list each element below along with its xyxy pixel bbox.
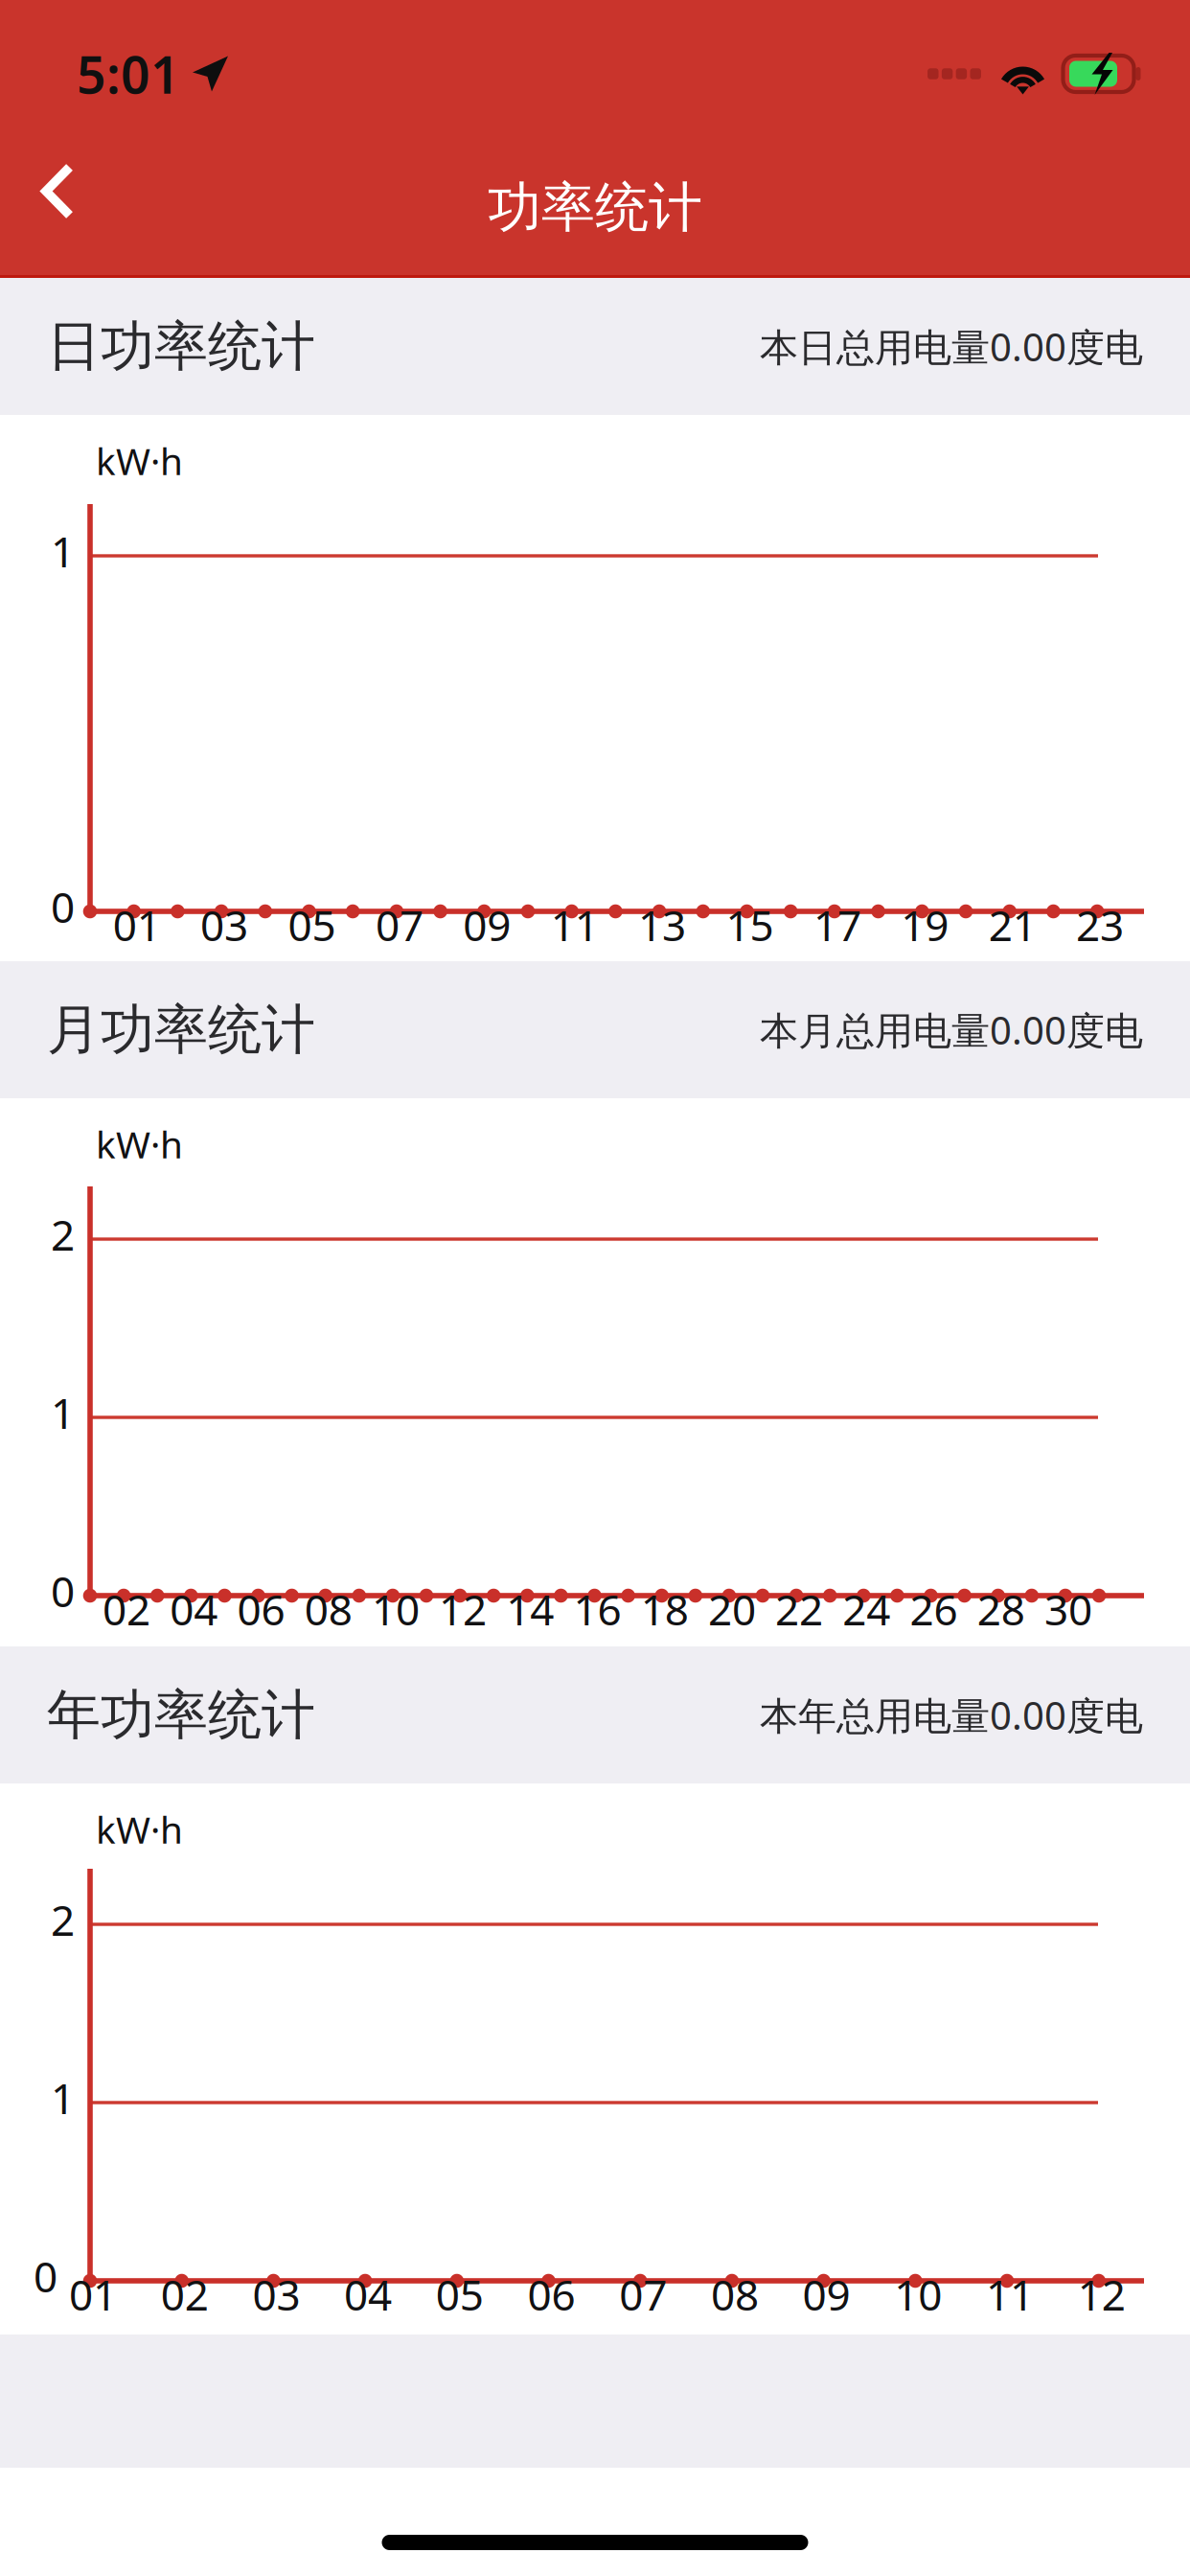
staticText: 22 — [775, 1581, 823, 1637]
staticText: 本年总用电量0.00度电 — [760, 1689, 1143, 1740]
staticText: 1 — [51, 1385, 75, 1441]
staticText: 04 — [170, 1581, 218, 1637]
staticText: 02 — [161, 2266, 209, 2322]
staticText: 18 — [641, 1581, 689, 1637]
staticText: 0 — [51, 1563, 75, 1619]
staticText: 1 — [51, 2070, 75, 2126]
button[interactable]: Back — [0, 106, 115, 276]
staticText: 21 — [989, 897, 1036, 953]
staticText: kW·h — [96, 1805, 183, 1854]
staticText: 23 — [1076, 897, 1124, 953]
staticText: 5:01 — [77, 40, 180, 108]
staticText: 07 — [619, 2266, 667, 2322]
staticText: 日功率统计 — [47, 313, 315, 379]
staticText: 01 — [113, 897, 161, 953]
staticText: 24 — [842, 1581, 890, 1637]
staticText: 年功率统计 — [47, 1682, 315, 1748]
staticText: 本月总用电量0.00度电 — [760, 1004, 1143, 1055]
staticText: 本日总用电量0.00度电 — [760, 321, 1143, 372]
staticText: 11 — [551, 897, 599, 953]
staticText: 20 — [708, 1581, 756, 1637]
staticText: 06 — [527, 2266, 575, 2322]
staticText: 13 — [638, 897, 686, 953]
staticText: 17 — [813, 897, 861, 953]
staticText: 12 — [1078, 2266, 1126, 2322]
staticText: 08 — [711, 2266, 759, 2322]
staticText: 07 — [375, 897, 423, 953]
staticText: 2 — [51, 1892, 75, 1948]
staticText: kW·h — [96, 436, 183, 485]
staticText: 06 — [237, 1581, 285, 1637]
staticText: 02 — [103, 1581, 151, 1637]
staticText: 03 — [200, 897, 248, 953]
staticText: 10 — [894, 2266, 942, 2322]
staticText: 2 — [51, 1206, 75, 1262]
staticText: kW·h — [96, 1119, 183, 1168]
staticText: 10 — [372, 1581, 420, 1637]
staticText: 14 — [506, 1581, 554, 1637]
staticText: 12 — [439, 1581, 487, 1637]
staticText: 28 — [977, 1581, 1025, 1637]
staticText: 16 — [573, 1581, 621, 1637]
staticText: 0 — [34, 2248, 57, 2304]
staticText: 0 — [51, 879, 75, 935]
staticText: 30 — [1044, 1581, 1092, 1637]
staticText: 15 — [726, 897, 774, 953]
staticText: 01 — [69, 2266, 117, 2322]
staticText: 05 — [288, 897, 336, 953]
staticText: 功率统计 — [488, 175, 702, 240]
staticText: 26 — [910, 1581, 958, 1637]
staticText: 09 — [803, 2266, 850, 2322]
staticText: 月功率统计 — [47, 997, 315, 1063]
staticText: 1 — [51, 523, 75, 579]
staticText: 09 — [463, 897, 511, 953]
staticText: 04 — [344, 2266, 392, 2322]
staticText: 11 — [986, 2266, 1034, 2322]
staticText: 03 — [252, 2266, 300, 2322]
staticText: 08 — [304, 1581, 352, 1637]
staticText: 05 — [436, 2266, 484, 2322]
staticText: 19 — [901, 897, 949, 953]
